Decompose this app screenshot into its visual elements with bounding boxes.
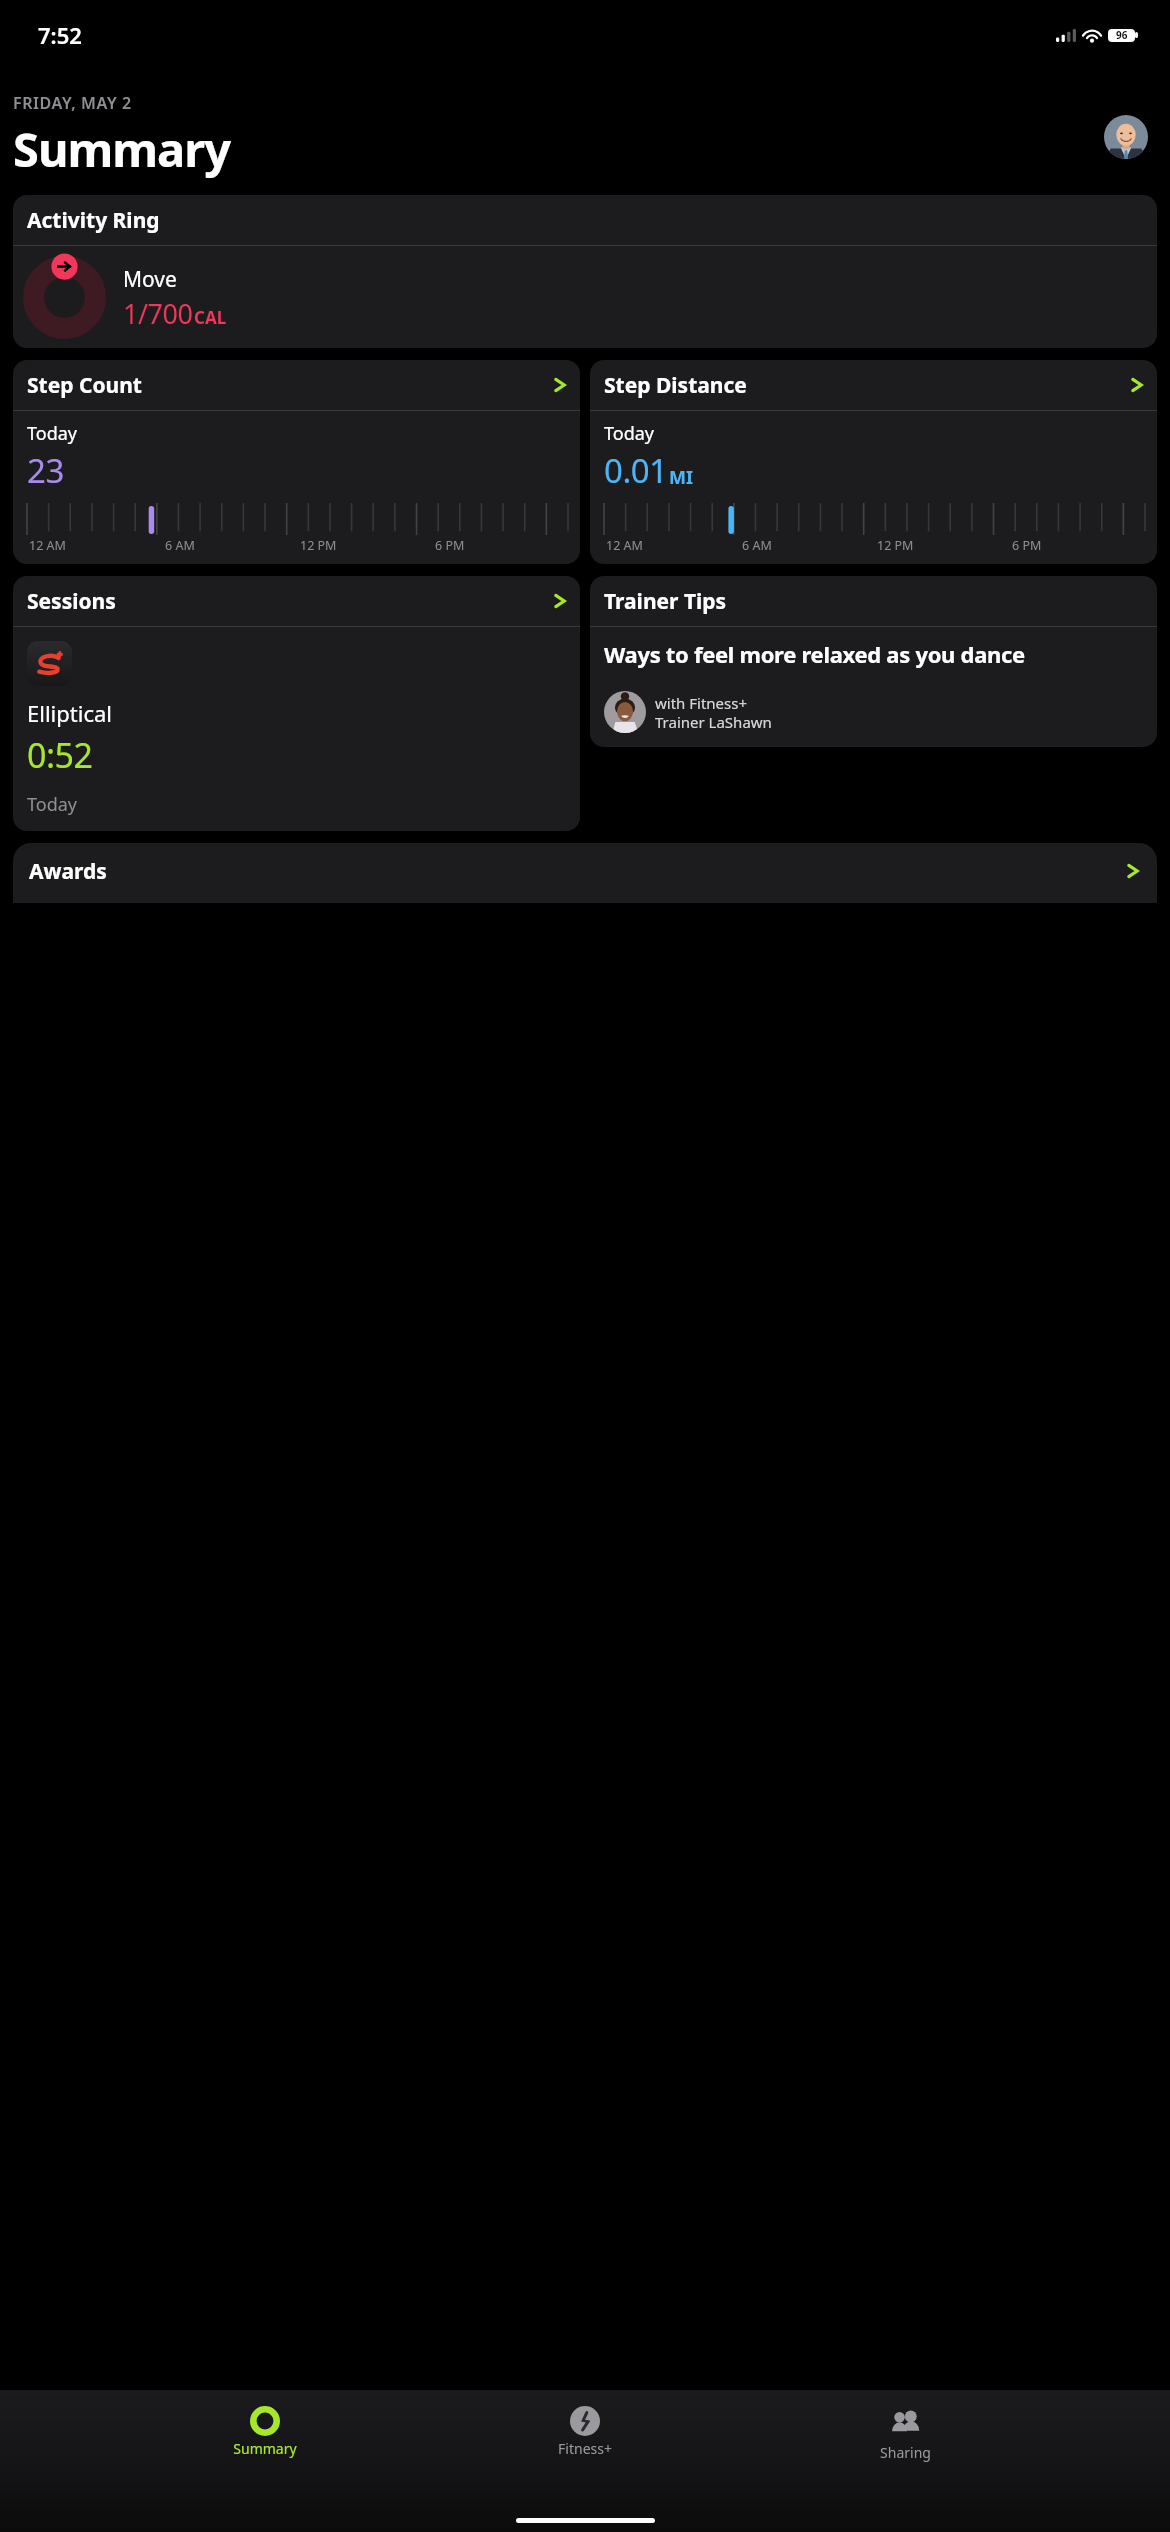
staticText: Fitness+ (558, 2439, 612, 2458)
staticText: Summary (13, 117, 231, 181)
staticText: Today (27, 792, 77, 817)
staticText: Summary (233, 2439, 297, 2458)
staticText: Step Count (27, 371, 142, 400)
staticText: 6 AM (742, 537, 772, 554)
staticText: Sharing (880, 2443, 931, 2462)
staticText: 7:52 (38, 20, 82, 50)
staticText: MI (669, 465, 693, 490)
staticText: 1/700 (123, 295, 193, 332)
button[interactable]: Profile (1104, 115, 1148, 159)
staticText: Move (123, 265, 177, 294)
staticText: 0:52 (27, 732, 93, 778)
button[interactable]: Step Distance (590, 360, 1157, 564)
staticText: Trainer Tips (604, 587, 727, 616)
staticText: Activity Ring (27, 206, 160, 235)
staticText: Elliptical (27, 698, 112, 728)
staticText: 0.01 (604, 448, 668, 493)
staticText: 23 (27, 448, 64, 493)
staticText: FRIDAY, MAY 2 (13, 92, 132, 114)
staticText: 12 AM (606, 537, 643, 554)
staticText: 96 (1116, 28, 1128, 42)
staticText: 12 PM (877, 537, 914, 554)
button[interactable]: Fitness+ (530, 2404, 640, 2460)
staticText: with Fitness+ Trainer LaShawn (655, 693, 772, 732)
staticText: CAL (194, 306, 227, 329)
staticText: Step Distance (604, 371, 747, 400)
staticText: Today (604, 421, 654, 446)
button[interactable]: Sessions (13, 576, 580, 831)
staticText: 6 AM (165, 537, 195, 554)
staticText: 6 PM (435, 537, 465, 554)
staticText: 12 PM (300, 537, 337, 554)
button[interactable]: Activity Ring (13, 195, 1157, 348)
staticText: 12 AM (29, 537, 66, 554)
staticText: Awards (29, 857, 107, 886)
button[interactable]: Trainer Tips (590, 576, 1157, 747)
staticText: 6 PM (1012, 537, 1042, 554)
button[interactable]: Sharing (850, 2404, 960, 2464)
staticText: Sessions (27, 587, 116, 616)
button[interactable]: Summary (210, 2404, 320, 2460)
button[interactable]: Awards (13, 843, 1157, 903)
staticText: Today (27, 421, 77, 446)
staticText: Ways to feel more relaxed as you dance (604, 639, 1025, 669)
button[interactable]: Step Count (13, 360, 580, 564)
